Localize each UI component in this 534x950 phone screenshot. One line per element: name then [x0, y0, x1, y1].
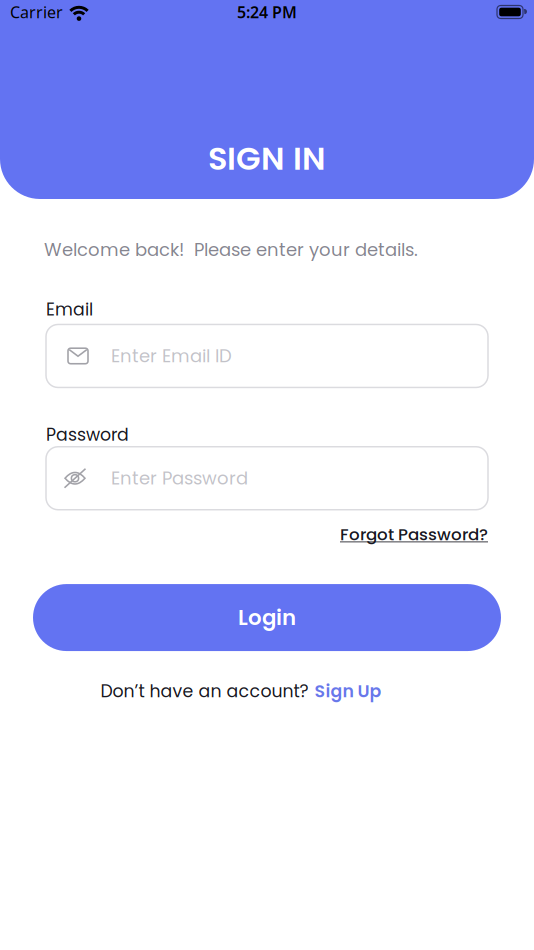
staticText: Forgot Password?: [340, 523, 488, 546]
staticText: Welcome back! Please enter your details.: [44, 237, 418, 262]
staticText: Enter Password: [111, 466, 248, 491]
staticText: Carrier: [10, 1, 63, 23]
staticText: Email: [46, 297, 93, 321]
button[interactable]: Login: [33, 584, 501, 651]
staticText: Enter Email ID: [111, 343, 232, 369]
staticText: Password: [46, 422, 129, 447]
button[interactable]: Sign Up: [314, 679, 381, 703]
staticText: 5:24 PM: [237, 1, 297, 23]
staticText: Login: [238, 603, 296, 632]
button[interactable]: Forgot Password?: [340, 523, 488, 546]
textField[interactable]: Enter Password: [46, 447, 488, 510]
staticText: SIGN IN: [208, 136, 326, 181]
staticText: Sign Up: [314, 679, 381, 703]
textField[interactable]: Enter Email ID: [46, 324, 488, 387]
staticText: Don’t have an account?: [100, 679, 308, 703]
